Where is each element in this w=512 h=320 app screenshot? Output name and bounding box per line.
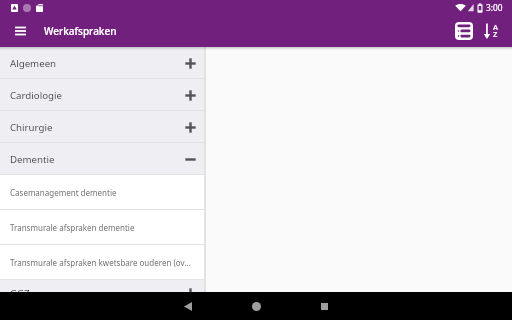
button[interactable]: Sort A to Z — [478, 17, 506, 45]
staticText: 3:00 — [486, 2, 503, 13]
button[interactable]: Open navigation menu — [9, 20, 31, 42]
staticText: Casemanagement dementie — [10, 187, 117, 198]
button[interactable]: Cardiologie — [0, 79, 204, 111]
button[interactable]: View list — [450, 17, 478, 45]
staticText: Z — [493, 29, 498, 39]
staticText: Transmurale afspraken kwetsbare ouderen … — [10, 257, 195, 268]
button[interactable]: GGZ — [0, 280, 204, 292]
button[interactable]: Home — [243, 293, 269, 319]
button[interactable]: Chirurgie — [0, 111, 204, 143]
staticText: GGZ — [10, 287, 30, 292]
button[interactable]: Algemeen — [0, 47, 204, 79]
staticText: Chirurgie — [10, 121, 53, 134]
button[interactable]: Casemanagement dementie — [0, 175, 204, 210]
button[interactable]: Transmurale afspraken kwetsbare ouderen … — [0, 245, 204, 280]
button[interactable]: Back — [175, 293, 201, 319]
staticText: Dementie — [10, 153, 55, 166]
button[interactable]: Transmurale afspraken dementie — [0, 210, 204, 245]
staticText: Transmurale afspraken dementie — [10, 222, 135, 233]
staticText: A — [493, 22, 498, 32]
staticText: Cardiologie — [10, 89, 62, 102]
button[interactable]: Recent apps — [311, 293, 337, 319]
button[interactable]: Dementie — [0, 143, 204, 175]
staticText: Werkafspraken — [44, 24, 117, 38]
staticText: Algemeen — [10, 57, 57, 70]
